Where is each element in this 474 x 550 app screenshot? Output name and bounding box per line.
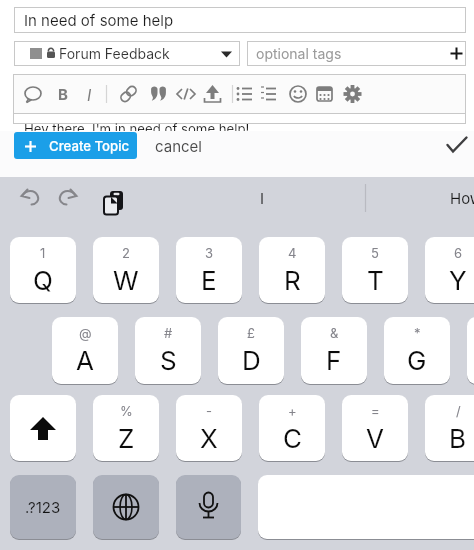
- staticText: +: [288, 403, 297, 419]
- staticText: *: [414, 325, 421, 341]
- staticText: 4: [288, 245, 297, 261]
- staticText: cancel: [155, 137, 202, 155]
- staticText: =: [371, 403, 380, 419]
- staticText: S: [160, 345, 177, 376]
- staticText: Forum Feedback: [59, 45, 170, 62]
- button[interactable]: &: [301, 317, 367, 384]
- staticText: .?123: [25, 498, 61, 516]
- button[interactable]: -: [176, 395, 242, 461]
- staticText: D: [242, 345, 261, 376]
- button[interactable]: /: [425, 395, 474, 461]
- button[interactable]: [13, 74, 466, 114]
- staticText: I: [260, 189, 265, 207]
- staticText: Q: [33, 265, 53, 296]
- staticText: £: [247, 325, 255, 341]
- staticText: V: [366, 423, 384, 454]
- button[interactable]: (: [467, 317, 474, 384]
- button[interactable]: [93, 475, 159, 539]
- button[interactable]: [447, 137, 467, 153]
- button[interactable]: optional tags: [247, 41, 466, 66]
- staticText: optional tags: [256, 45, 342, 62]
- staticText: Y: [449, 265, 467, 296]
- staticText: &: [330, 325, 339, 341]
- button[interactable]: 3: [176, 237, 242, 303]
- staticText: R: [284, 265, 301, 296]
- button[interactable]: 4: [259, 237, 325, 303]
- staticText: Z: [118, 423, 135, 454]
- button[interactable]: 2: [93, 237, 159, 303]
- button[interactable]: cancel: [155, 131, 202, 160]
- button[interactable]: 6: [425, 237, 474, 303]
- button[interactable]: +: [259, 395, 325, 461]
- staticText: F: [326, 345, 342, 376]
- staticText: E: [201, 265, 217, 296]
- button[interactable]: *: [384, 317, 450, 384]
- button[interactable]: 1: [10, 237, 76, 303]
- button[interactable]: %: [93, 395, 159, 461]
- staticText: Hey there, I'm in need of some help!: [24, 121, 250, 137]
- staticText: %: [120, 403, 133, 419]
- staticText: 5: [371, 245, 379, 261]
- button[interactable]: =: [342, 395, 408, 461]
- staticText: W: [113, 265, 139, 296]
- button[interactable]: Forum Feedback: [14, 41, 240, 66]
- staticText: 1: [40, 245, 46, 261]
- staticText: Create Topic: [49, 138, 130, 154]
- button[interactable]: In need of some help: [14, 7, 466, 33]
- button[interactable]: £: [218, 317, 284, 384]
- staticText: C: [283, 423, 302, 454]
- staticText: B: [449, 423, 467, 454]
- staticText: B: [58, 85, 68, 103]
- staticText: In need of some help: [24, 11, 174, 29]
- staticText: -: [206, 403, 212, 419]
- staticText: A: [76, 345, 94, 376]
- button[interactable]: @: [52, 317, 118, 384]
- staticText: 2: [122, 245, 130, 261]
- staticText: T: [367, 265, 384, 296]
- staticText: #: [164, 325, 173, 341]
- staticText: G: [407, 345, 427, 376]
- staticText: 3: [205, 245, 214, 261]
- button[interactable]: .?123: [10, 475, 76, 539]
- button[interactable]: [10, 395, 76, 461]
- staticText: I: [87, 85, 92, 104]
- staticText: X: [200, 423, 218, 454]
- staticText: How: [450, 189, 474, 207]
- button[interactable]: Create Topic: [14, 132, 137, 159]
- button[interactable]: #: [135, 317, 201, 384]
- staticText: @: [79, 325, 92, 341]
- staticText: /: [456, 403, 461, 419]
- staticText: 6: [454, 245, 463, 261]
- button[interactable]: 5: [342, 237, 408, 303]
- button[interactable]: [176, 475, 241, 539]
